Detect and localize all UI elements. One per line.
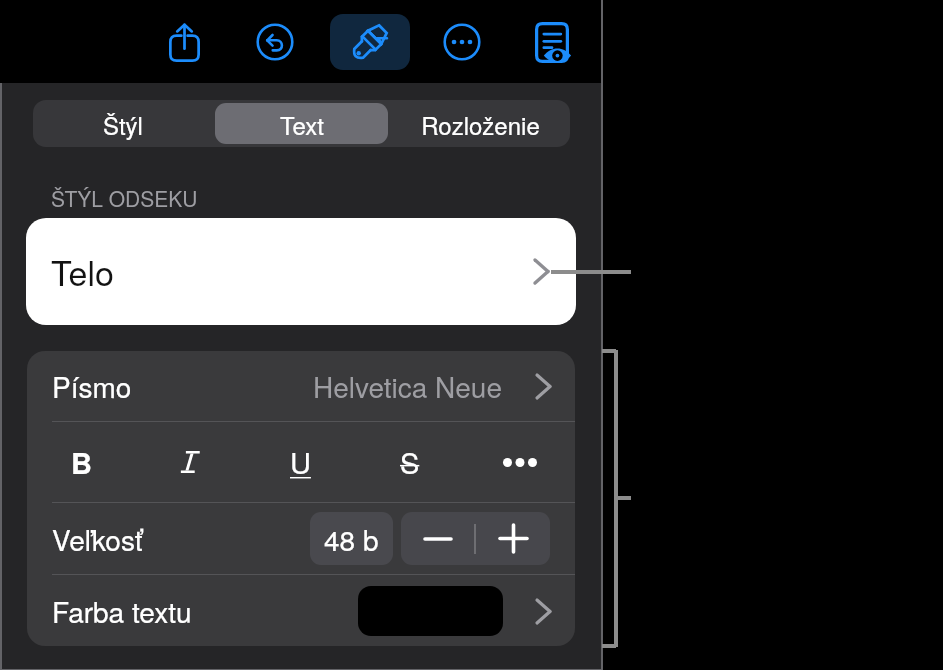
button[interactable]: 48 b — [310, 512, 393, 565]
staticText: Text — [280, 107, 324, 141]
staticText: Veľkosť — [52, 519, 143, 559]
staticText: Helvetica Neue — [313, 366, 503, 406]
button[interactable]: Rozloženie — [394, 103, 567, 144]
staticText: Písmo — [52, 366, 132, 406]
button[interactable]: U — [245, 422, 355, 502]
staticText: U — [290, 441, 311, 483]
staticText: B — [71, 441, 92, 483]
button[interactable]: More options — [434, 14, 490, 70]
button[interactable]: S — [355, 422, 465, 502]
button[interactable]: Telo — [26, 218, 576, 325]
button[interactable]: Format — [330, 14, 410, 70]
button[interactable]: Štýl — [36, 103, 209, 144]
button[interactable]: More text styles — [465, 422, 575, 502]
staticText: Štýl — [103, 107, 143, 141]
button[interactable]: Increase size — [476, 512, 550, 565]
button[interactable]: Farba textu — [27, 575, 575, 646]
staticText: Rozloženie — [421, 107, 540, 141]
button[interactable]: Italic — [136, 422, 245, 502]
button[interactable]: Share — [156, 14, 212, 70]
staticText: 48 b — [324, 519, 379, 559]
button[interactable]: Document view — [524, 14, 580, 70]
button[interactable]: B — [27, 422, 136, 502]
staticText: S — [400, 441, 420, 483]
button[interactable]: Undo — [247, 14, 303, 70]
button[interactable]: Text — [215, 103, 388, 144]
staticText: ŠTÝL ODSEKU — [51, 183, 198, 213]
staticText: Telo — [51, 247, 114, 296]
button[interactable]: Decrease size — [401, 512, 474, 565]
staticText: Farba textu — [52, 591, 192, 631]
button[interactable]: Písmo — [27, 351, 575, 421]
